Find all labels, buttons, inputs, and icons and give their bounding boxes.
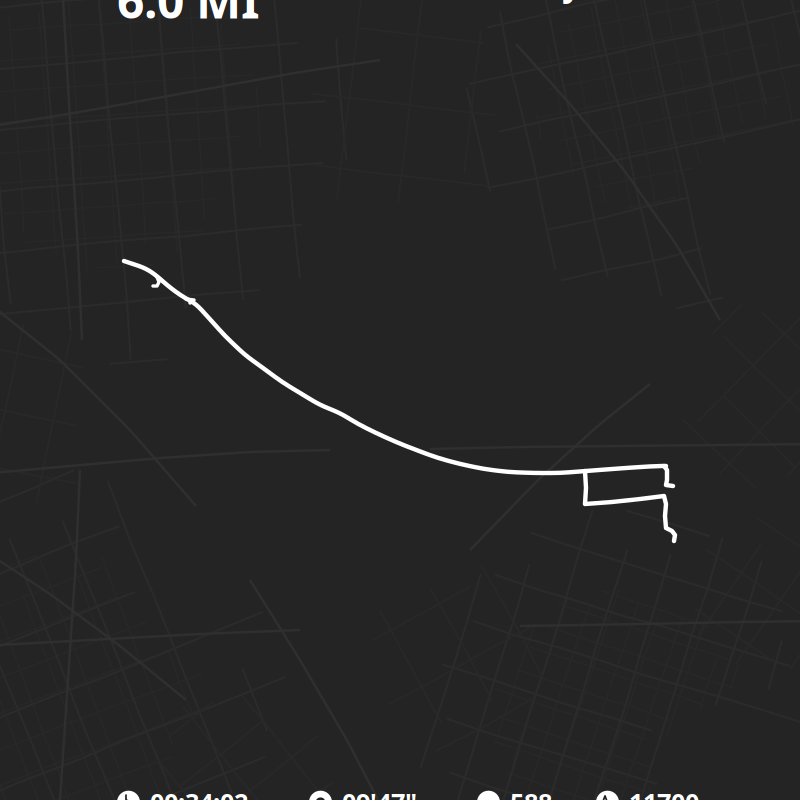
- staticText: 09'47": [342, 785, 417, 800]
- button[interactable]: 09'47": [309, 785, 417, 800]
- button[interactable]: 00:34:02: [117, 785, 248, 800]
- button[interactable]: 11700: [596, 785, 699, 800]
- staticText: 00:34:02: [150, 785, 248, 800]
- staticText: Monday, user: [447, 0, 673, 5]
- button[interactable]: 588: [477, 785, 552, 800]
- staticText: 6.0 MI: [117, 0, 260, 32]
- staticText: 588: [510, 785, 552, 800]
- staticText: 11700: [629, 785, 699, 800]
